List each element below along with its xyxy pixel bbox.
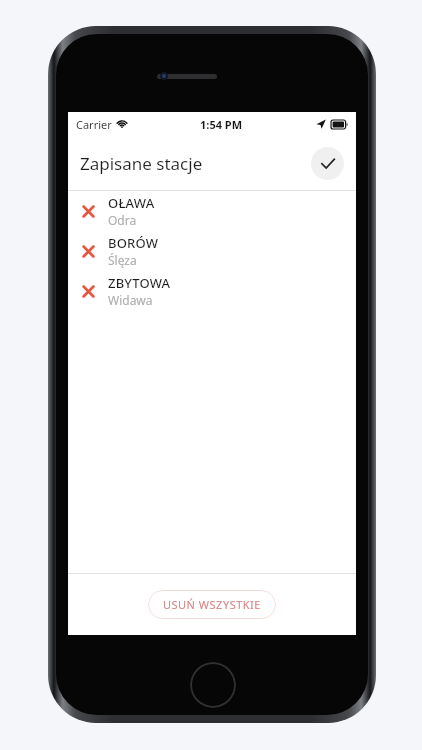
button[interactable]: OŁAWA [68, 191, 356, 231]
staticText: USUŃ WSZYSTKIE [163, 597, 261, 612]
staticText: ZBYTOWA [108, 274, 171, 292]
staticText: 1:54 PM [200, 117, 243, 132]
button[interactable]: USUŃ WSZYSTKIE [148, 590, 276, 619]
button[interactable]: Confirm [311, 147, 344, 180]
staticText: Odra [108, 212, 137, 228]
staticText: Ślęza [108, 252, 137, 268]
staticText: OŁAWA [108, 194, 155, 212]
button[interactable]: BORÓW [68, 231, 356, 271]
staticText: Carrier [76, 117, 112, 132]
staticText: Widawa [108, 292, 153, 308]
staticText: BORÓW [108, 234, 159, 252]
staticText: Zapisane stacje [80, 152, 203, 175]
button[interactable]: ZBYTOWA [68, 271, 356, 311]
